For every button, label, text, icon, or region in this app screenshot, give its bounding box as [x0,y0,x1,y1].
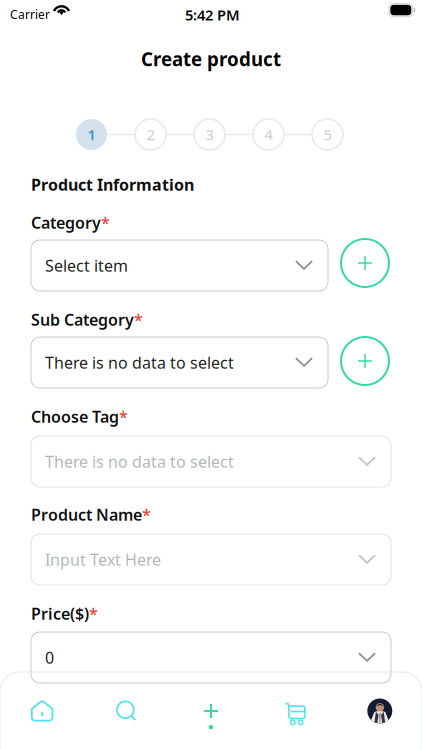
staticText: 2 [146,125,154,144]
button[interactable]: 4 [253,119,284,150]
staticText: Create product [141,47,281,71]
staticText: There is no data to select [45,451,234,472]
button[interactable]: Add product [169,672,253,750]
button[interactable]: Home [0,672,84,750]
staticText: 5 [323,125,331,144]
staticText: There is no data to select [45,352,234,373]
button[interactable]: There is no data to select [31,436,391,487]
button[interactable]: Add [340,238,389,287]
staticText: * [134,309,143,330]
staticText: 3 [205,125,213,144]
button[interactable]: Cart [253,672,338,750]
button[interactable]: Profile [338,672,422,750]
staticText: Product Information [31,174,194,195]
button[interactable]: Input Text Here [31,534,391,585]
staticText: 5:42 PM [185,5,240,24]
button[interactable]: Add [340,336,389,385]
button[interactable]: 0 [31,632,391,683]
staticText: Select item [45,255,128,276]
staticText: Category [31,212,101,233]
button[interactable]: 2 [135,119,166,150]
button[interactable]: 5 [312,119,343,150]
staticText: * [89,603,98,624]
staticText: Sub Category [31,309,134,330]
staticText: 0 [45,647,54,668]
staticText: Price($) [31,603,89,624]
button[interactable]: Search [84,672,169,750]
staticText: Carrier [10,6,50,22]
staticText: Input Text Here [45,549,161,570]
staticText: * [142,504,151,525]
staticText: * [119,406,128,427]
button[interactable]: 1 [76,119,107,150]
button[interactable]: There is no data to select [31,337,328,388]
button[interactable]: 3 [194,119,225,150]
staticText: 4 [264,125,272,144]
staticText: Choose Tag [31,406,119,427]
staticText: Product Name [31,504,142,525]
staticText: 1 [87,125,95,144]
button[interactable]: Select item [31,240,328,291]
staticText: * [101,212,110,233]
